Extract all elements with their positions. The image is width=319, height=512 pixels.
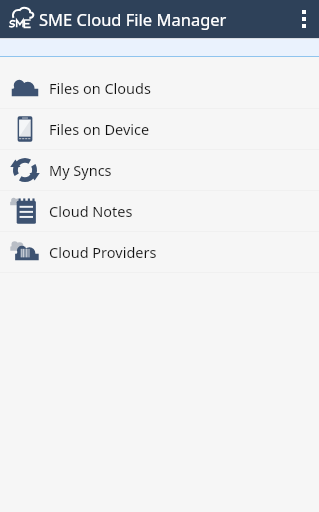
- staticText: My Syncs: [49, 160, 112, 180]
- button[interactable]: Cloud Providers: [0, 232, 319, 272]
- staticText: SME Cloud File Manager: [39, 8, 227, 30]
- button[interactable]: Files on Device: [0, 109, 319, 149]
- button[interactable]: Files on Clouds: [0, 68, 319, 108]
- staticText: Files on Device: [49, 119, 150, 139]
- button[interactable]: Cloud Notes: [0, 191, 319, 231]
- staticText: Cloud Providers: [49, 242, 157, 262]
- staticText: Cloud Notes: [49, 201, 133, 221]
- staticText: Files on Clouds: [49, 78, 151, 98]
- button[interactable]: More options: [289, 0, 319, 38]
- button[interactable]: My Syncs: [0, 150, 319, 190]
